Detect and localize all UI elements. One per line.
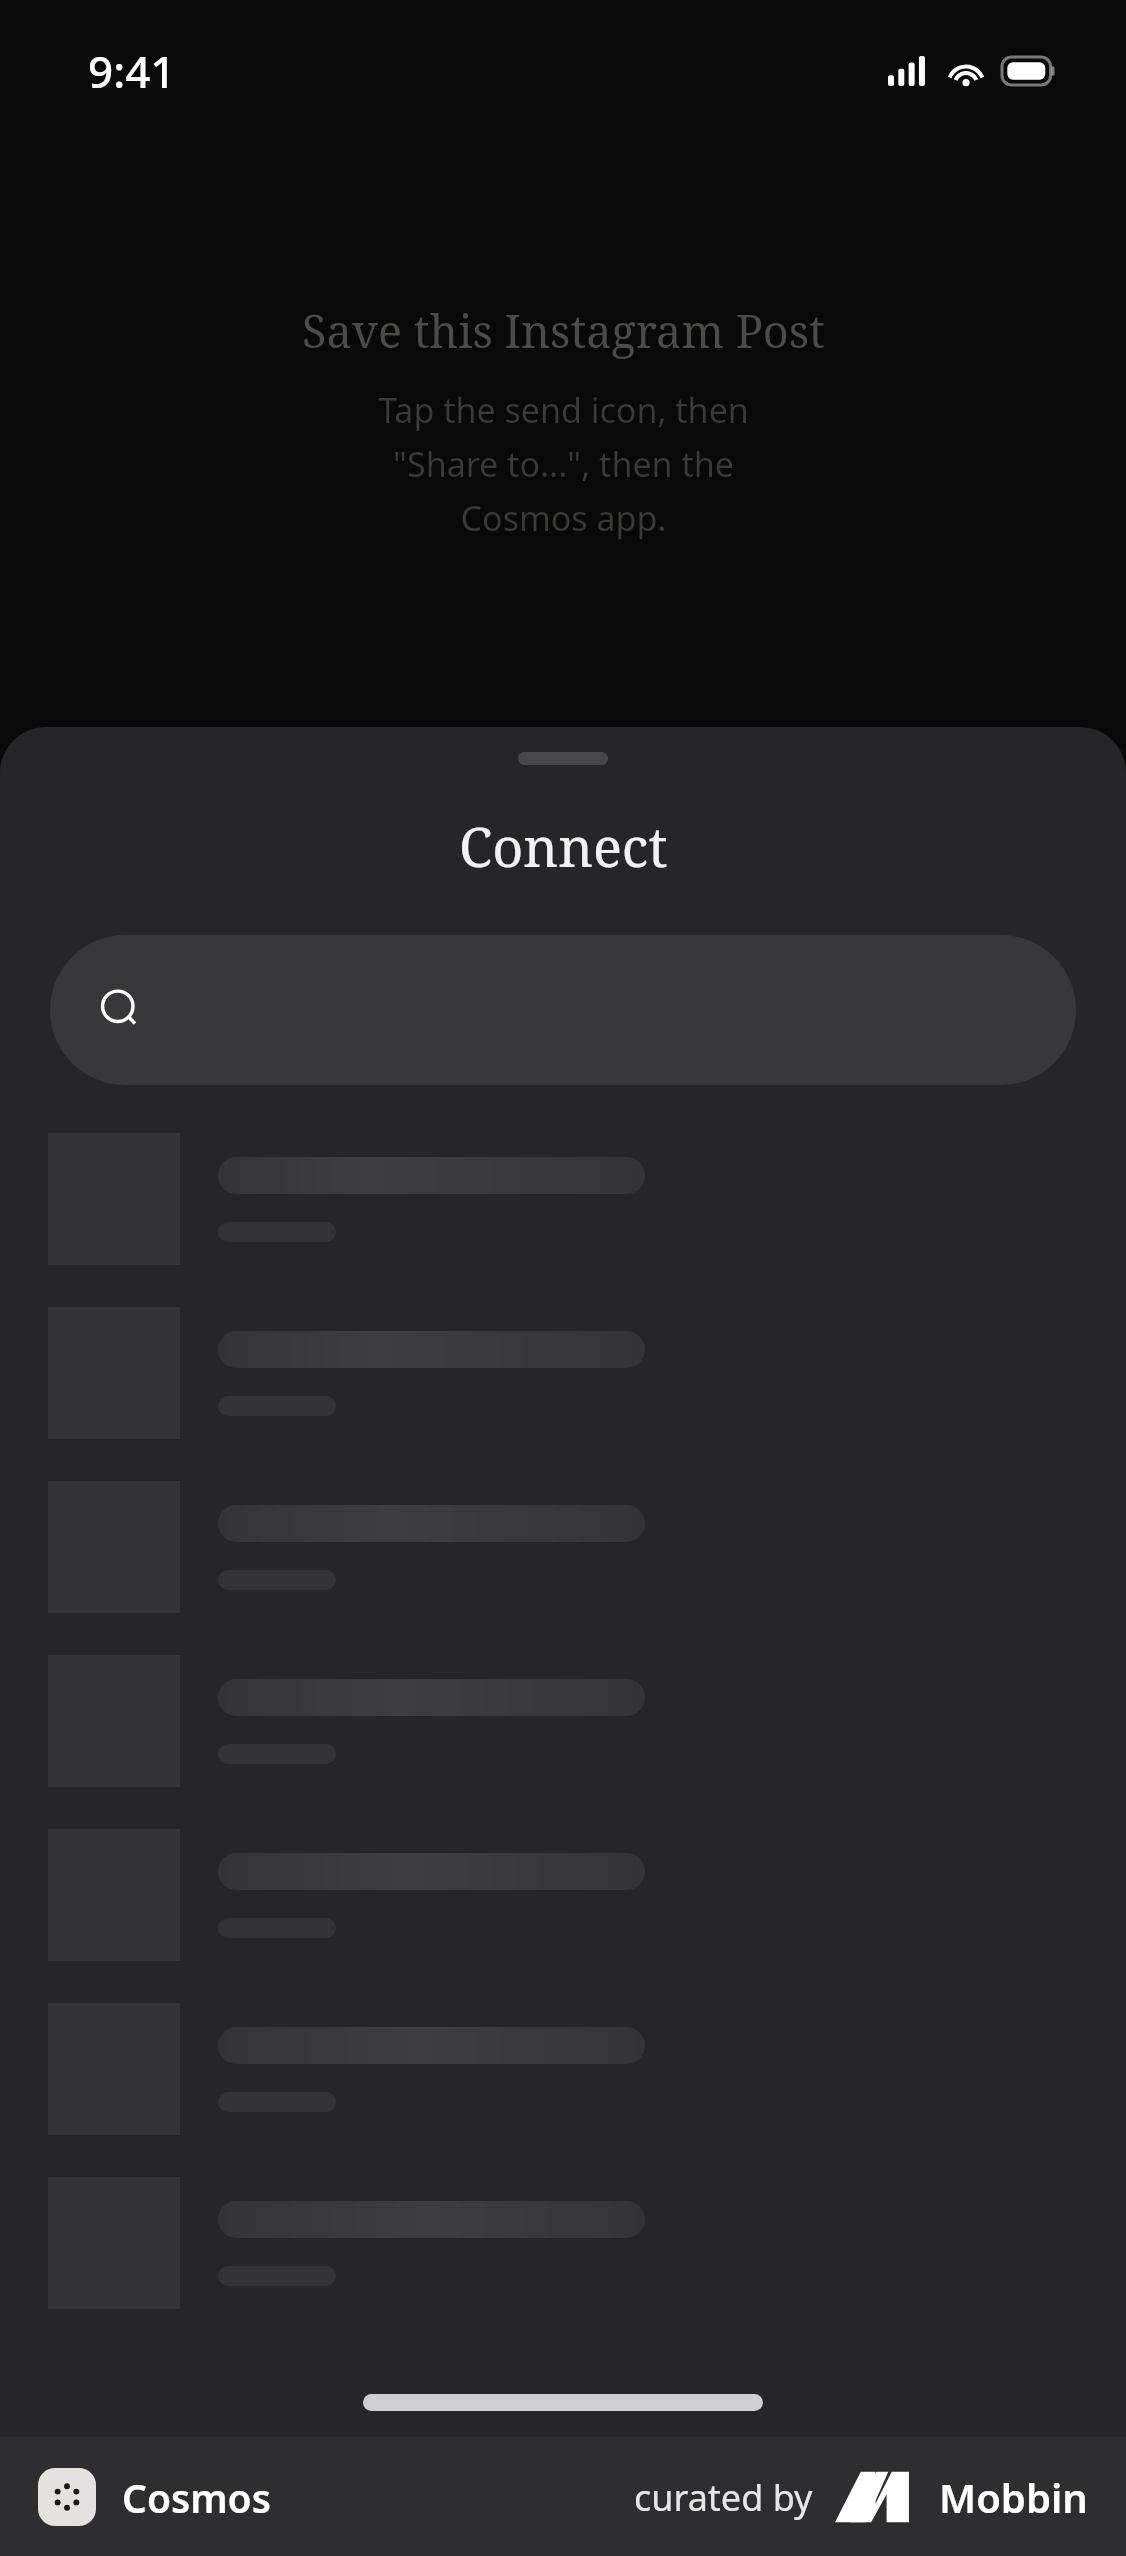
button[interactable]: Loading item	[48, 1133, 1078, 1265]
button[interactable]: Search	[50, 935, 1076, 1085]
button[interactable]: Loading item	[48, 2177, 1078, 2309]
button[interactable]: Loading item	[48, 1829, 1078, 1961]
staticText: Cosmos	[122, 2471, 271, 2524]
staticText: Mobbin	[939, 2470, 1088, 2524]
button[interactable]: Loading item	[48, 1655, 1078, 1787]
staticText: Connect	[459, 809, 668, 883]
button[interactable]: Loading item	[48, 1307, 1078, 1439]
button[interactable]: Cosmos	[38, 2468, 271, 2526]
button[interactable]: Loading item	[48, 1481, 1078, 1613]
staticText: Tap the send icon, then "Share to...", t…	[378, 387, 749, 541]
staticText: Save this Instagram Post	[302, 300, 825, 361]
staticText: 9:41	[88, 41, 176, 101]
staticText: curated by	[634, 2473, 813, 2522]
button[interactable]: Loading item	[48, 2003, 1078, 2135]
